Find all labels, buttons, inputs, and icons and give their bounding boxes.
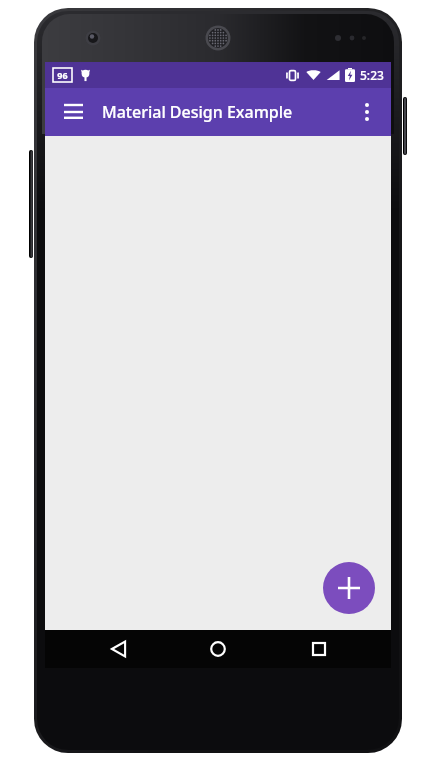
button[interactable]: Back [90, 630, 146, 668]
staticText: Material Design Example [102, 101, 293, 123]
staticText: 96 [57, 69, 68, 81]
button[interactable]: Open navigation drawer [53, 92, 93, 132]
staticText: 5:23 [360, 67, 384, 83]
button[interactable]: Add [323, 562, 375, 614]
button[interactable]: Home [190, 630, 246, 668]
button[interactable]: Recent apps [291, 630, 347, 668]
button[interactable]: More options [347, 92, 387, 132]
